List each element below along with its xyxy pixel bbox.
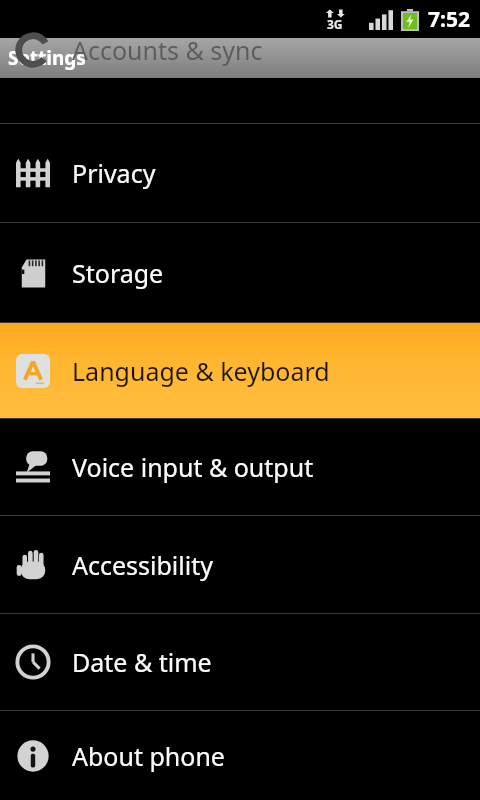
staticText: 7:52: [428, 5, 470, 34]
staticText: Privacy: [72, 156, 156, 190]
button[interactable]: Date & time: [0, 614, 480, 710]
button[interactable]: Voice input & output: [0, 419, 480, 515]
button[interactable]: Storage: [0, 223, 480, 322]
staticText: Settings: [8, 45, 86, 71]
staticText: Accounts & sync: [72, 33, 263, 67]
button[interactable]: Accessibility: [0, 516, 480, 613]
staticText: Storage: [72, 256, 164, 290]
staticText: Voice input & output: [72, 450, 314, 484]
button[interactable]: Privacy: [0, 124, 480, 222]
button[interactable]: Language & keyboard: [0, 323, 480, 418]
staticText: 3G: [327, 16, 343, 32]
button[interactable]: About phone: [0, 711, 480, 800]
staticText: Date & time: [72, 645, 212, 679]
staticText: Accessibility: [72, 548, 213, 582]
staticText: Language & keyboard: [72, 354, 330, 388]
staticText: About phone: [72, 739, 225, 773]
